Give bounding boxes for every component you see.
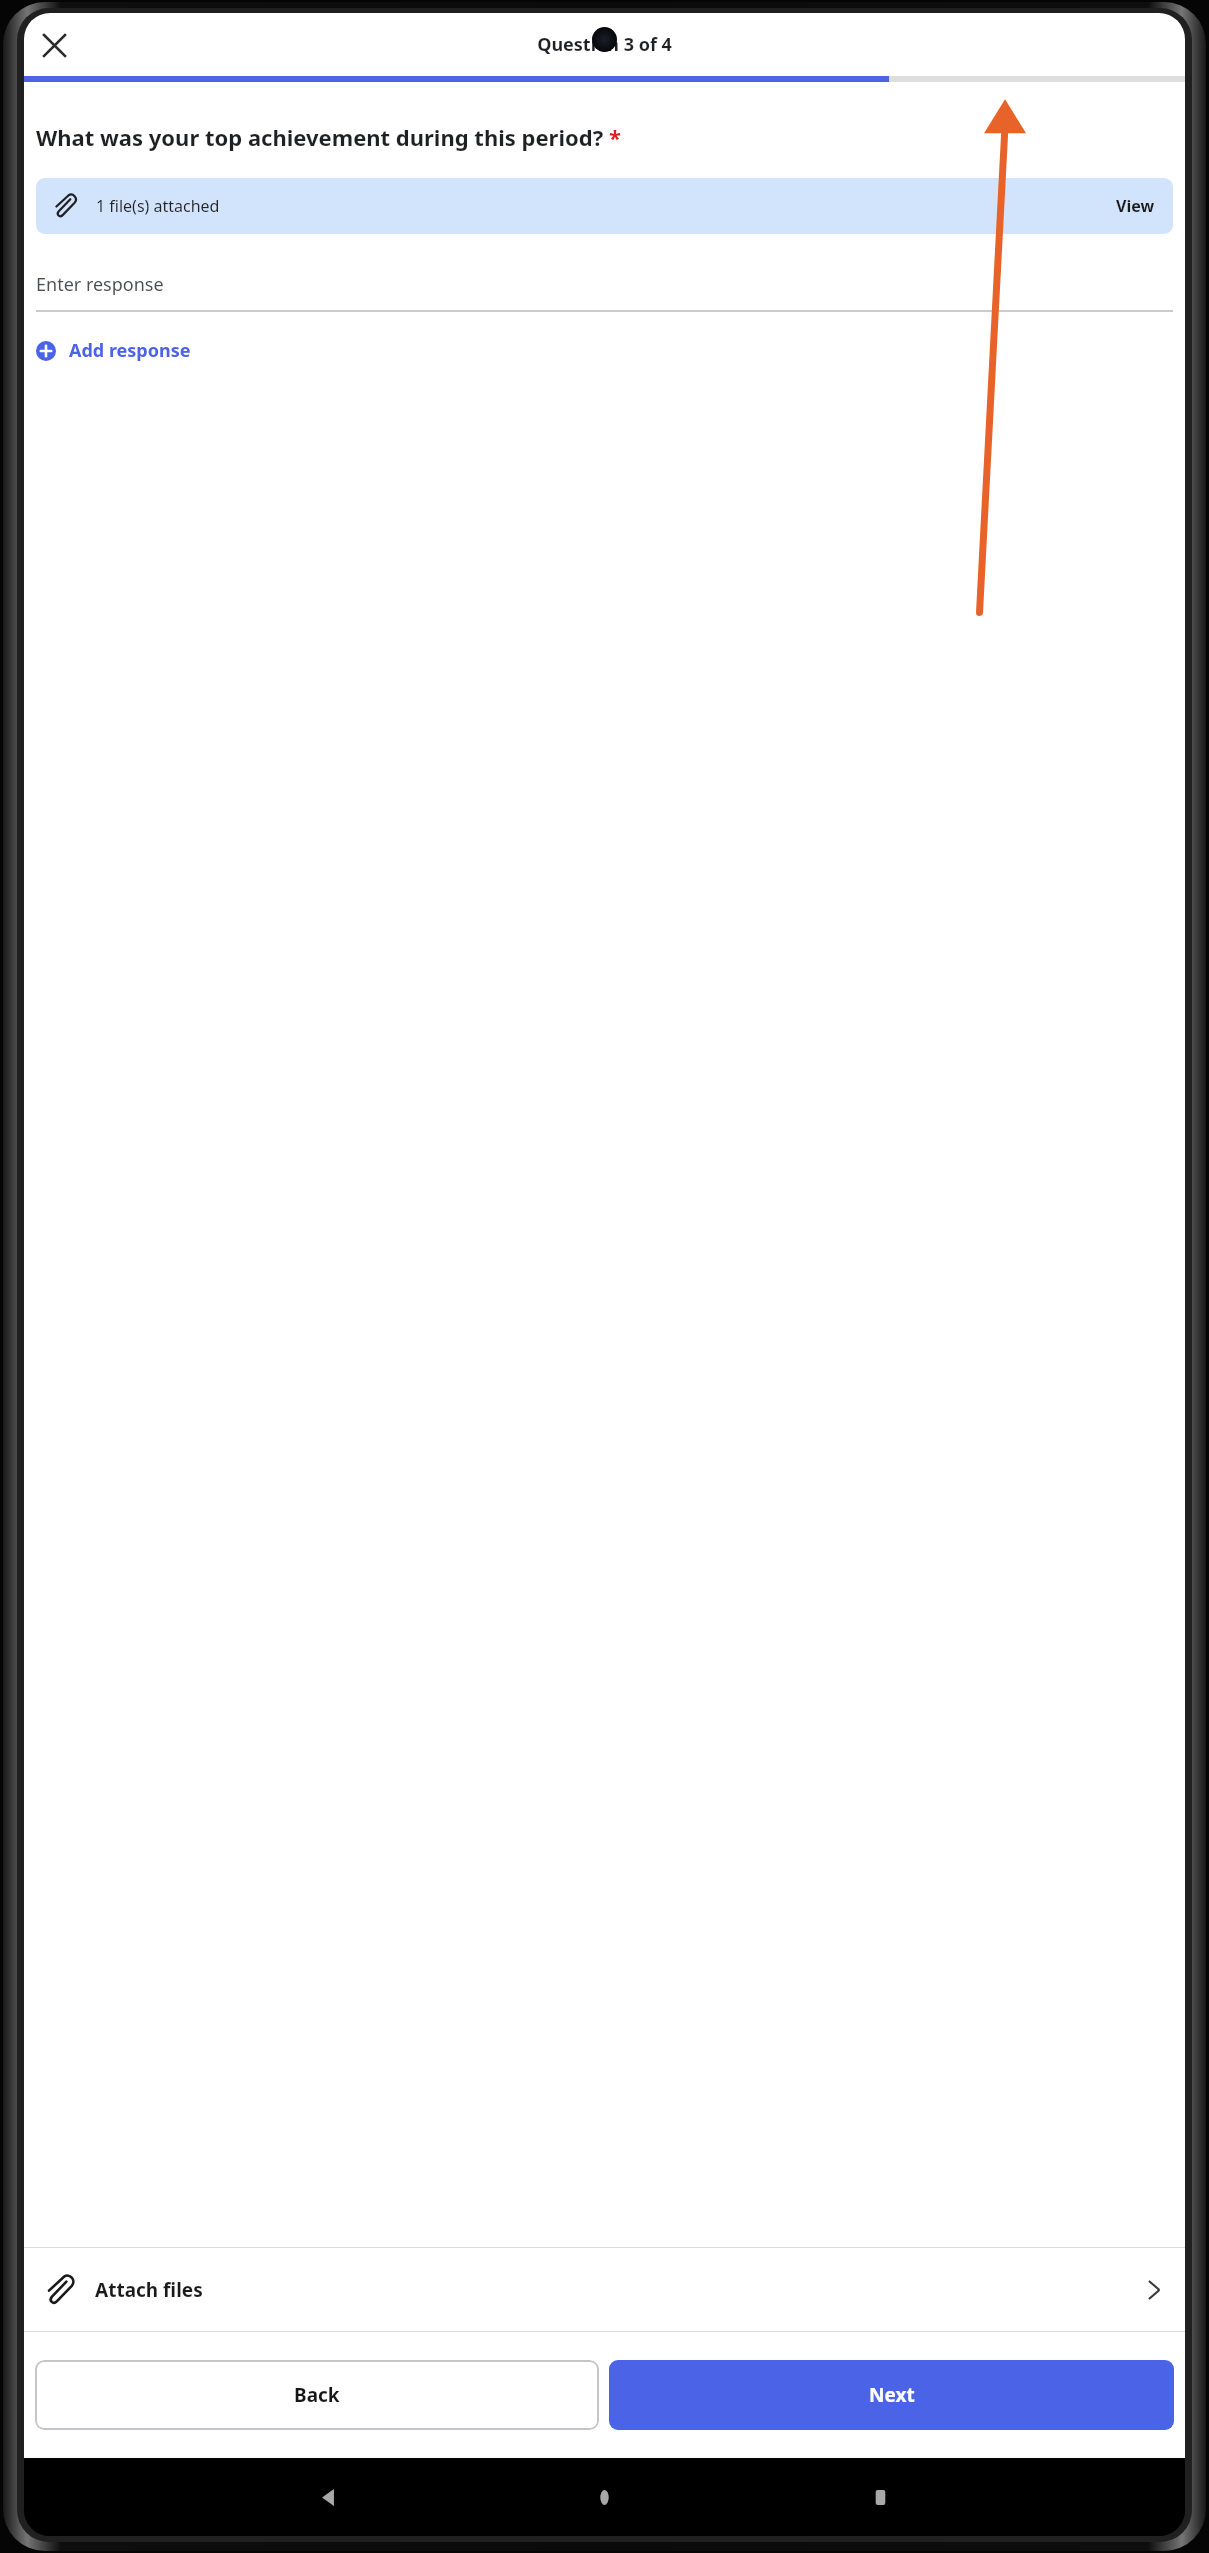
staticText: Enter response: [36, 272, 164, 297]
staticText: Question 3 of 4: [537, 32, 672, 57]
button[interactable]: View: [1116, 195, 1155, 217]
button[interactable]: Attach files: [24, 2248, 1185, 2331]
button[interactable]: Close: [30, 21, 78, 69]
staticText: 1 file(s) attached: [96, 195, 220, 217]
staticText: Back: [294, 2382, 340, 2408]
button[interactable]: Enter response: [36, 258, 1173, 312]
staticText: Attach files: [95, 2277, 203, 2303]
button[interactable]: Recents: [858, 2475, 902, 2519]
button[interactable]: 1 file(s) attached: [36, 178, 1173, 234]
button[interactable]: Add response: [36, 334, 191, 367]
button[interactable]: Back: [306, 2475, 350, 2519]
staticText: Add response: [69, 338, 191, 363]
button[interactable]: Back: [35, 2360, 599, 2430]
staticText: What was your top achievement during thi…: [36, 122, 1173, 152]
button[interactable]: Next: [609, 2360, 1174, 2430]
button[interactable]: Home: [582, 2475, 626, 2519]
staticText: Next: [869, 2382, 915, 2408]
